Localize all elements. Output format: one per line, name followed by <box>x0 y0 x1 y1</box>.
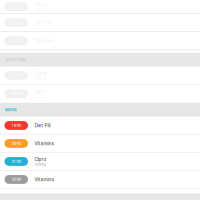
button[interactable]: 16:30 <box>0 85 200 103</box>
staticText: Vitamins <box>34 38 53 43</box>
staticText: Diet Pill <box>34 123 50 128</box>
button[interactable]: 15:00 <box>0 67 200 84</box>
button[interactable]: 12:00 <box>0 0 200 13</box>
button[interactable]: 20:43 <box>0 135 200 152</box>
button[interactable]: 22:00 <box>0 171 200 188</box>
button[interactable]: 21:00 <box>0 153 200 170</box>
staticText: Cipro <box>34 156 46 162</box>
button[interactable]: 13:00 <box>0 32 200 49</box>
staticText: Vitamins <box>34 141 53 146</box>
staticText: 22:00 <box>12 177 21 182</box>
staticText: abends <box>4 107 16 112</box>
staticText: Cipro <box>34 2 46 7</box>
staticText: Cipro <box>34 89 46 94</box>
staticText: 20:43 <box>12 141 21 146</box>
staticText: Vitamins <box>34 177 53 182</box>
staticText: 500mg <box>34 162 45 166</box>
staticText: Cipro <box>34 70 46 76</box>
button[interactable]: 19:00 <box>0 117 200 134</box>
staticText: 19:00 <box>12 123 21 128</box>
button[interactable]: 12:30 <box>0 14 200 31</box>
staticText: Diet Pill <box>34 20 50 25</box>
staticText: nachmittags <box>4 57 25 62</box>
staticText: 21:00 <box>12 159 21 164</box>
